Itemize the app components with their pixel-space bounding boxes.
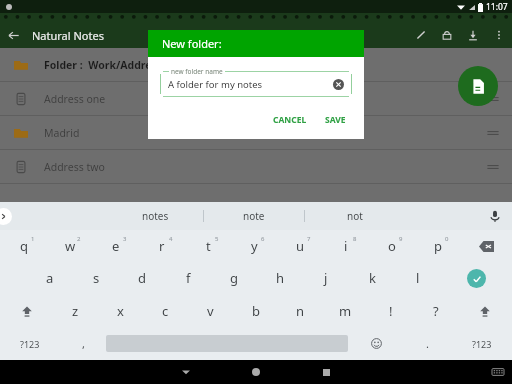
- button[interactable]: Address one: [0, 82, 512, 115]
- staticText: 9: [399, 235, 403, 243]
- staticText: New folder:: [162, 36, 222, 51]
- button[interactable]: Emoji: [348, 327, 404, 360]
- staticText: c: [162, 302, 169, 320]
- staticText: y: [251, 237, 258, 255]
- button[interactable]: o: [369, 230, 415, 262]
- button[interactable]: w: [47, 230, 93, 262]
- button[interactable]: Back: [175, 361, 197, 383]
- button[interactable]: Recents: [315, 361, 337, 383]
- button[interactable]: Download: [460, 22, 486, 48]
- button[interactable]: z: [53, 294, 98, 327]
- staticText: ?: [433, 302, 439, 320]
- staticText: SAVE: [325, 114, 346, 126]
- button[interactable]: Lock: [434, 22, 460, 48]
- staticText: 0: [445, 235, 449, 243]
- staticText: w: [65, 237, 76, 255]
- button[interactable]: Address two: [0, 150, 512, 183]
- button[interactable]: t: [185, 230, 231, 262]
- button[interactable]: r: [139, 230, 185, 262]
- button[interactable]: x: [98, 294, 143, 327]
- staticText: s: [93, 269, 100, 287]
- button[interactable]: m: [323, 294, 368, 327]
- button[interactable]: Edit: [408, 22, 434, 48]
- staticText: new folder name: [171, 67, 223, 76]
- button[interactable]: k: [349, 262, 395, 294]
- staticText: ,: [82, 336, 85, 351]
- staticText: a: [46, 269, 54, 287]
- staticText: t: [206, 237, 211, 255]
- staticText: 8: [353, 235, 357, 243]
- button[interactable]: New note: [458, 66, 498, 106]
- button[interactable]: Switch keyboard: [492, 366, 504, 378]
- staticText: x: [117, 302, 124, 320]
- button[interactable]: Shift: [0, 294, 53, 327]
- button[interactable]: c: [143, 294, 188, 327]
- button[interactable]: s: [73, 262, 119, 294]
- button[interactable]: !: [368, 294, 413, 327]
- staticText: z: [72, 302, 79, 320]
- button[interactable]: notes: [108, 202, 203, 230]
- staticText: j: [324, 269, 328, 287]
- staticText: 4: [169, 235, 173, 243]
- button[interactable]: ?123: [0, 327, 60, 360]
- button[interactable]: ?: [413, 294, 458, 327]
- button[interactable]: .: [404, 327, 451, 360]
- button[interactable]: Madrid: [0, 116, 512, 149]
- staticText: Folder : Work/Address: [44, 58, 163, 72]
- staticText: b: [252, 302, 260, 320]
- staticText: v: [207, 302, 214, 320]
- staticText: m: [339, 302, 352, 320]
- button[interactable]: Backspace: [461, 230, 512, 262]
- staticText: notes: [142, 209, 169, 223]
- staticText: g: [230, 269, 238, 287]
- button[interactable]: a: [26, 262, 73, 294]
- button[interactable]: Clear text: [333, 79, 344, 90]
- button[interactable]: y: [231, 230, 277, 262]
- staticText: note: [243, 209, 265, 223]
- button[interactable]: h: [257, 262, 303, 294]
- staticText: A folder for my notes: [168, 78, 263, 91]
- button[interactable]: p: [415, 230, 461, 262]
- staticText: l: [416, 269, 420, 287]
- button[interactable]: l: [395, 262, 441, 294]
- button[interactable]: Shift: [458, 294, 512, 327]
- button[interactable]: d: [119, 262, 165, 294]
- button[interactable]: q: [0, 230, 47, 262]
- button[interactable]: f: [165, 262, 211, 294]
- staticText: e: [112, 237, 120, 255]
- staticText: ?123: [20, 338, 40, 350]
- button[interactable]: Enter: [441, 262, 512, 294]
- button[interactable]: i: [323, 230, 369, 262]
- button[interactable]: SAVE: [319, 111, 352, 129]
- button[interactable]: Expand toolbar: [0, 208, 12, 225]
- staticText: n: [296, 302, 305, 320]
- button[interactable]: Back: [0, 22, 26, 48]
- button[interactable]: b: [233, 294, 278, 327]
- staticText: r: [159, 237, 165, 255]
- staticText: d: [138, 269, 146, 287]
- button[interactable]: v: [188, 294, 233, 327]
- button[interactable]: not: [305, 202, 405, 230]
- button[interactable]: e: [93, 230, 139, 262]
- staticText: 5: [215, 235, 219, 243]
- staticText: CANCEL: [273, 114, 307, 126]
- button[interactable]: u: [277, 230, 323, 262]
- staticText: k: [369, 269, 376, 287]
- button[interactable]: CANCEL: [267, 111, 313, 129]
- button[interactable]: More options: [486, 22, 512, 48]
- button[interactable]: ,: [60, 327, 106, 360]
- staticText: 2: [77, 235, 81, 243]
- staticText: u: [296, 237, 305, 255]
- staticText: h: [276, 269, 285, 287]
- button[interactable]: g: [211, 262, 257, 294]
- button[interactable]: Voice input: [488, 209, 502, 223]
- button[interactable]: A folder for my notes: [160, 71, 352, 97]
- button[interactable]: note: [204, 202, 304, 230]
- button[interactable]: n: [278, 294, 323, 327]
- button[interactable]: j: [303, 262, 349, 294]
- button[interactable]: ?123: [451, 327, 512, 360]
- button[interactable]: Folder : Work/Address: [0, 48, 512, 81]
- button[interactable]: Home: [245, 361, 267, 383]
- staticText: 6: [261, 235, 265, 243]
